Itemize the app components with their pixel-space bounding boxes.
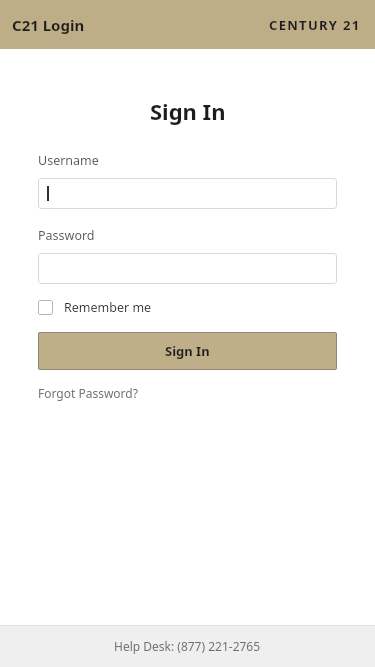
button[interactable]: Forgot Password?: [38, 383, 138, 403]
button[interactable]: Remember me: [38, 299, 152, 316]
button[interactable]: Username input field: [38, 178, 337, 209]
button[interactable]: Sign In: [38, 332, 337, 370]
staticText: Sign In: [165, 342, 210, 360]
button[interactable]: Help Desk: (877) 221-2765: [108, 634, 267, 658]
button[interactable]: Century 21 home: [267, 10, 363, 40]
staticText: Sign In: [150, 96, 226, 126]
staticText: Password: [38, 227, 95, 244]
staticText: Help Desk: (877) 221-2765: [114, 638, 261, 654]
staticText: Username: [38, 152, 99, 169]
staticText: Remember me: [64, 299, 152, 316]
staticText: C21 Login: [12, 15, 85, 35]
staticText: Forgot Password?: [38, 385, 138, 401]
button[interactable]: C21 Login: [10, 9, 87, 41]
button[interactable]: Password input field: [38, 253, 337, 284]
staticText: CENTURY 21: [269, 16, 361, 34]
